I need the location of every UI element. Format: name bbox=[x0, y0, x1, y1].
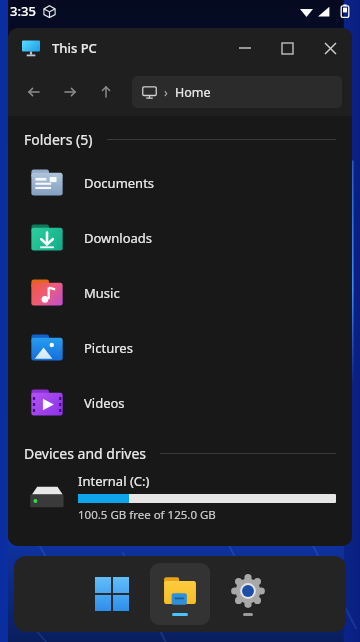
button[interactable]: Minimize bbox=[224, 28, 266, 68]
staticText: 3:35 bbox=[10, 2, 36, 20]
staticText: › bbox=[164, 84, 168, 100]
button[interactable]: › bbox=[132, 76, 342, 108]
button[interactable]: Back bbox=[16, 74, 52, 110]
button[interactable]: Downloads bbox=[8, 210, 352, 265]
staticText: Folders (5) bbox=[24, 130, 93, 149]
button[interactable]: Pictures bbox=[8, 320, 352, 375]
button[interactable]: Start bbox=[84, 566, 140, 622]
staticText: Downloads bbox=[84, 229, 153, 247]
staticText: Pictures bbox=[84, 339, 133, 357]
staticText: Internal (C:) bbox=[78, 472, 150, 490]
button[interactable]: Documents bbox=[8, 155, 352, 210]
button[interactable]: Videos bbox=[8, 375, 352, 430]
staticText: Videos bbox=[84, 394, 125, 412]
button[interactable]: Maximize bbox=[266, 28, 308, 68]
staticText: This PC bbox=[52, 39, 97, 57]
button[interactable]: Music bbox=[8, 265, 352, 320]
staticText: 100.5 GB free of 125.0 GB bbox=[78, 507, 216, 523]
staticText: Music bbox=[84, 284, 120, 302]
button[interactable]: Close bbox=[308, 28, 352, 68]
button[interactable]: Forward bbox=[52, 74, 88, 110]
button[interactable]: Settings bbox=[220, 563, 276, 625]
staticText: Documents bbox=[84, 174, 155, 192]
staticText: Home bbox=[175, 84, 211, 101]
button[interactable]: Up bbox=[88, 74, 124, 110]
button[interactable]: File Explorer bbox=[150, 563, 210, 625]
button[interactable]: Internal (C:) bbox=[8, 469, 352, 525]
staticText: Devices and drives bbox=[24, 444, 146, 463]
